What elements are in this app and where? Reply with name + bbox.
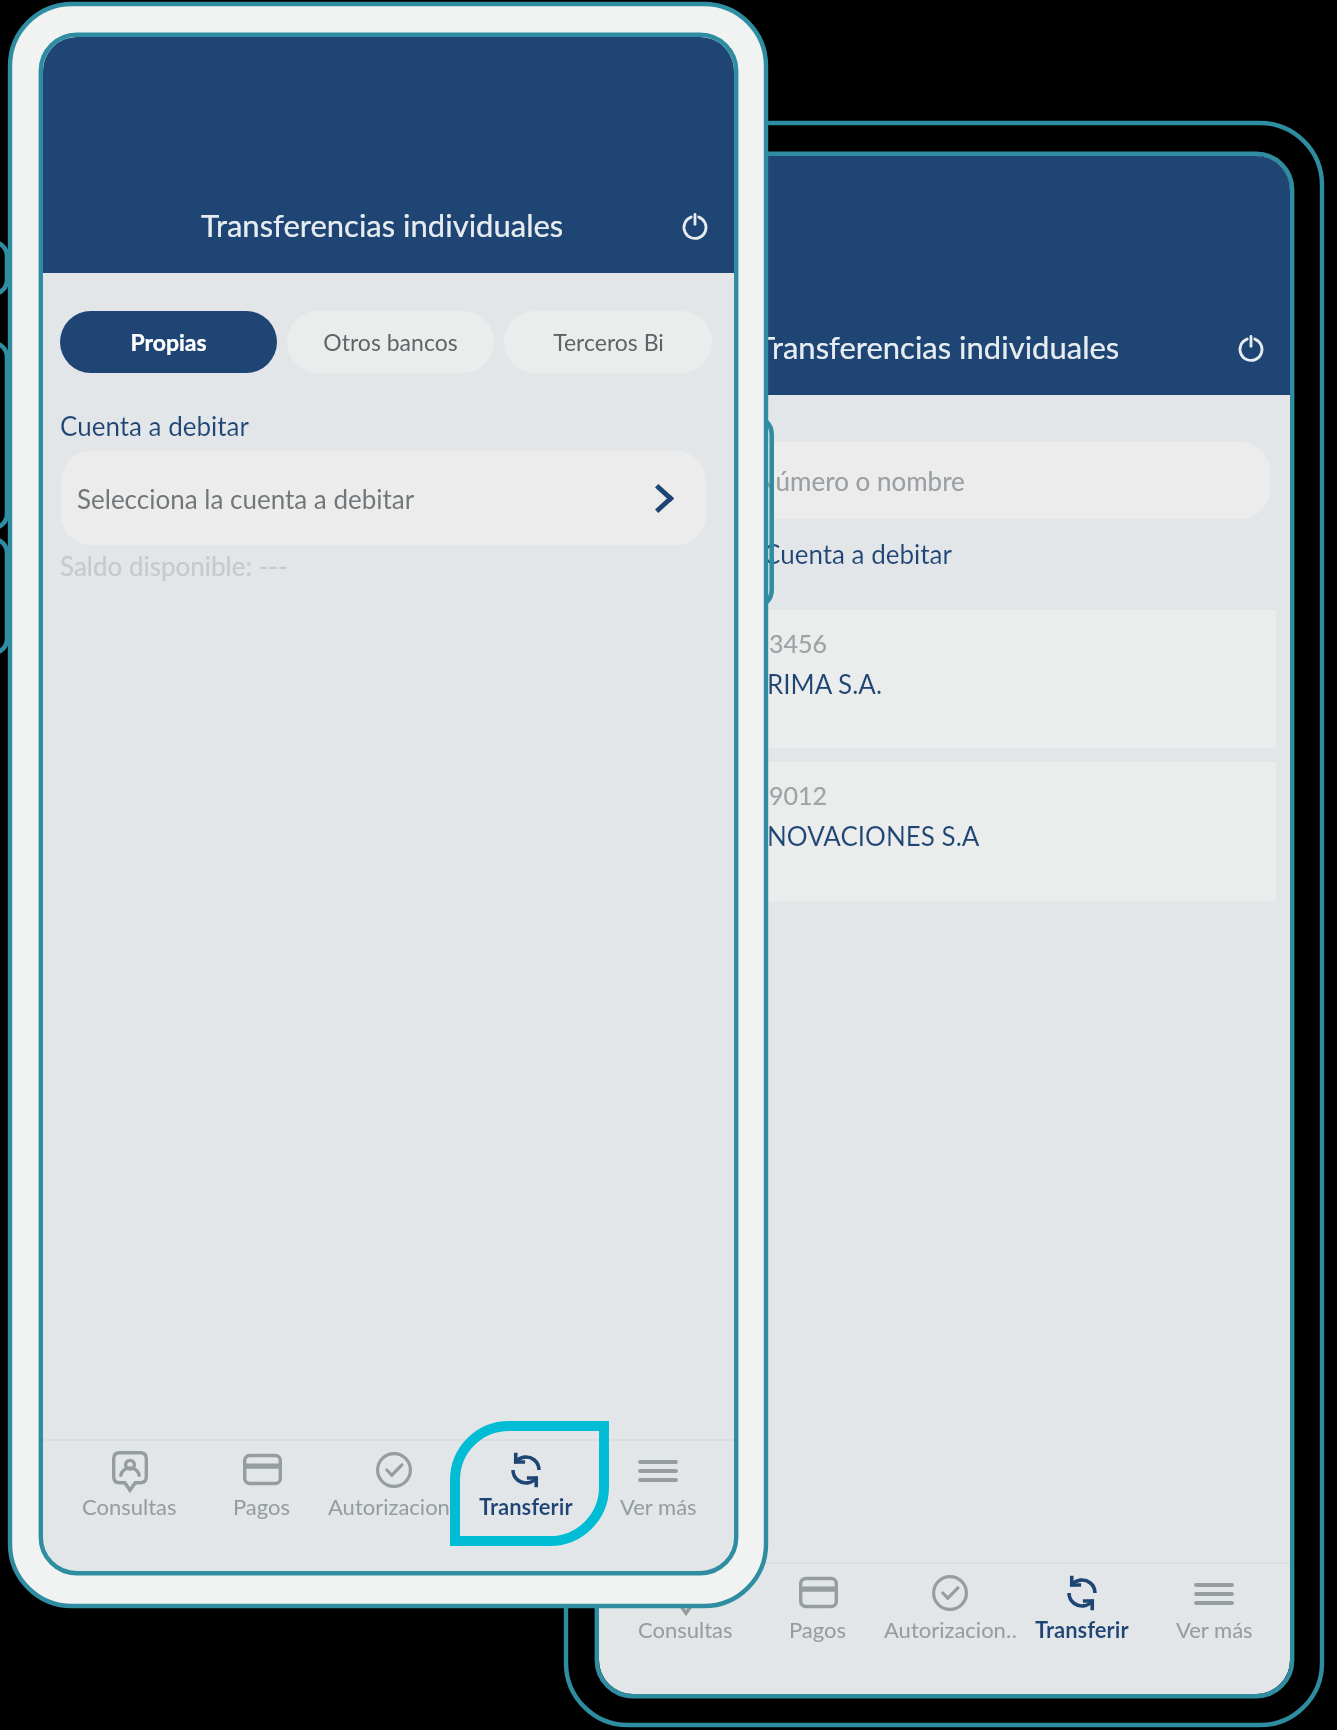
staticText: 3456 <box>769 628 828 658</box>
staticText: 9012 <box>769 780 828 810</box>
button[interactable]: 3456 <box>599 610 1276 748</box>
staticText: Cuenta a debitar <box>763 538 952 569</box>
button[interactable]: Consultas <box>63 1439 196 1571</box>
button[interactable]: Autorizacion… <box>884 1562 1016 1694</box>
staticText: Terceros Bi <box>553 328 664 356</box>
staticText: Transferencias individuales <box>757 328 1120 365</box>
staticText: Consultas <box>638 1616 733 1642</box>
button[interactable]: Terceros Bi <box>504 311 712 373</box>
button[interactable]: Transferir <box>460 1439 592 1571</box>
staticText: Saldo disponible: --- <box>60 550 288 581</box>
staticText: Ver más <box>1176 1616 1253 1642</box>
button[interactable]: Selecciona la cuenta a debitar <box>61 451 706 545</box>
staticText: Número o nombre <box>756 465 965 496</box>
staticText: Autorizacion… <box>884 1616 1016 1642</box>
button[interactable]: Pagos <box>752 1562 884 1694</box>
button[interactable]: Cerrar sesión <box>667 197 723 253</box>
staticText: Pagos <box>233 1493 291 1519</box>
staticText: Consultas <box>82 1493 177 1519</box>
button[interactable]: Número o nombre <box>617 442 1270 519</box>
button[interactable]: Autorizacion… <box>328 1439 460 1571</box>
button[interactable]: Otros bancos <box>287 311 494 373</box>
staticText: Pagos <box>789 1616 847 1642</box>
staticText: Transferir <box>479 1493 573 1519</box>
button[interactable]: Pagos <box>196 1439 328 1571</box>
button[interactable]: 9012 <box>599 762 1276 901</box>
button[interactable]: Ver más <box>1148 1562 1280 1694</box>
staticText: Propias <box>130 328 207 356</box>
staticText: Cuenta a debitar <box>60 410 249 441</box>
staticText: Autorizacion… <box>328 1493 460 1519</box>
staticText: Selecciona la cuenta a debitar <box>77 483 415 514</box>
staticText: Ver más <box>620 1493 697 1519</box>
button[interactable]: Propias <box>60 311 277 373</box>
staticText: Transferir <box>1035 1616 1129 1642</box>
button[interactable]: Transferir <box>1016 1562 1148 1694</box>
staticText: Otros bancos <box>323 328 458 356</box>
staticText: NOVACIONES S.A <box>767 820 980 851</box>
staticText: RIMA S.A. <box>767 668 883 699</box>
button[interactable]: Ver más <box>592 1439 724 1571</box>
button[interactable]: Cerrar sesión <box>1223 319 1279 375</box>
staticText: Transferencias individuales <box>201 206 564 243</box>
button[interactable]: Consultas <box>619 1562 752 1694</box>
